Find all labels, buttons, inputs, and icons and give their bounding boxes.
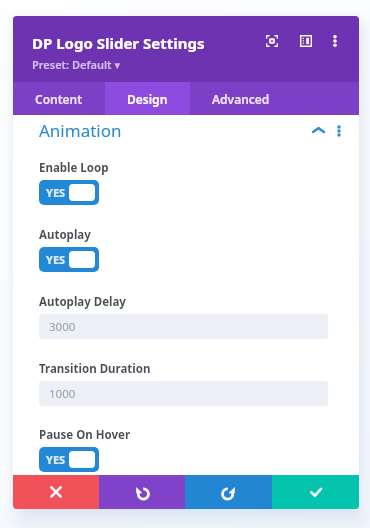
staticText: DP Logo Slider Settings <box>32 33 205 53</box>
button[interactable]: YES <box>39 447 99 472</box>
button[interactable]: Save <box>272 475 359 509</box>
button[interactable]: Advanced <box>190 82 292 115</box>
button[interactable]: More options <box>324 30 346 52</box>
staticText: Design <box>127 91 168 107</box>
button[interactable]: Content <box>13 82 105 115</box>
staticText: YES <box>46 185 66 200</box>
button[interactable]: YES <box>39 180 99 205</box>
staticText: Autoplay <box>39 227 91 243</box>
staticText: Enable Loop <box>39 160 109 176</box>
button[interactable]: 3000 <box>39 314 328 339</box>
staticText: Animation <box>39 119 122 142</box>
staticText: Autoplay Delay <box>39 294 126 310</box>
staticText: YES <box>46 452 66 467</box>
staticText: Pause On Hover <box>39 427 131 443</box>
button[interactable]: Layout <box>295 30 317 52</box>
staticText: Content <box>35 91 83 107</box>
button[interactable]: Focus mode <box>261 30 283 52</box>
staticText: 3000 <box>49 319 76 335</box>
button[interactable]: Close <box>13 475 99 509</box>
staticText: Preset: Default ▾ <box>32 57 120 72</box>
staticText: 1000 <box>49 386 76 402</box>
button[interactable]: 1000 <box>39 381 328 406</box>
button[interactable]: Design <box>105 82 190 115</box>
button[interactable]: YES <box>39 247 99 272</box>
button[interactable]: Undo <box>99 475 185 509</box>
staticText: YES <box>46 252 66 267</box>
staticText: Transition Duration <box>39 361 151 377</box>
staticText: Advanced <box>212 91 270 107</box>
button[interactable]: Animation <box>39 119 345 142</box>
button[interactable]: Redo <box>185 475 272 509</box>
